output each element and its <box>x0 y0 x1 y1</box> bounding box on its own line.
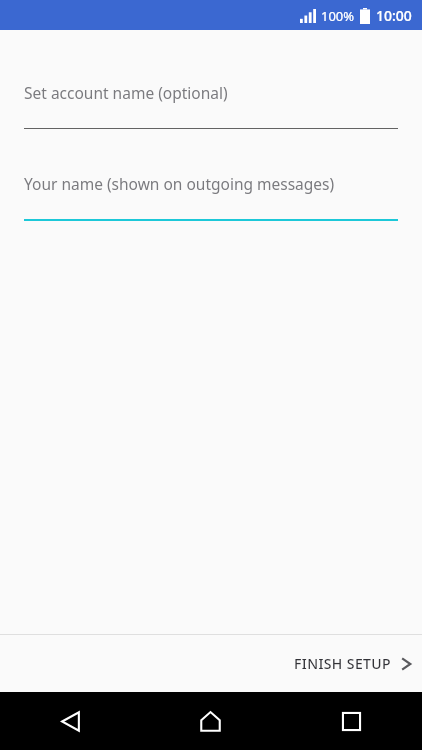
staticText: Your name (shown on outgoing messages) <box>24 173 335 194</box>
staticText: Set account name (optional) <box>24 82 228 103</box>
staticText: FINISH SETUP <box>294 654 392 673</box>
button[interactable]: Set account name (optional) <box>0 82 422 129</box>
button[interactable]: Home <box>140 692 281 750</box>
button[interactable]: FINISH SETUP <box>274 642 422 685</box>
button[interactable]: Recent apps <box>281 692 422 750</box>
staticText: 100% <box>321 7 355 25</box>
staticText: 10:00 <box>376 6 412 25</box>
button[interactable]: Your name (shown on outgoing messages) <box>0 173 422 221</box>
button[interactable]: Back <box>0 692 140 750</box>
